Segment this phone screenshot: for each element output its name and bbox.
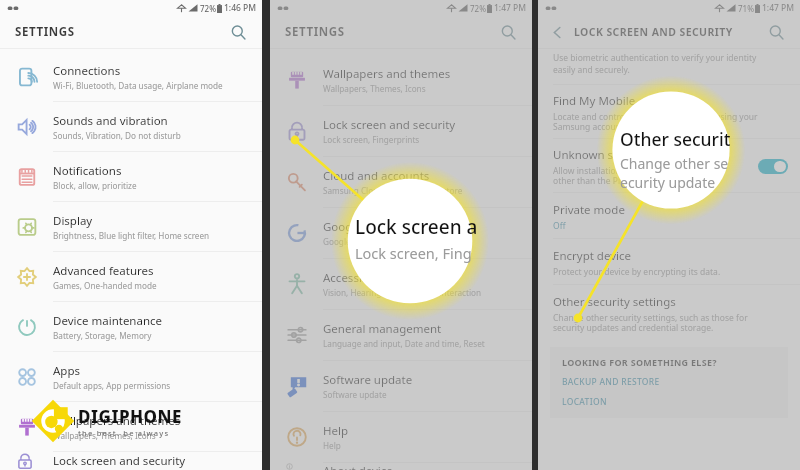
staticText: Language and input, Date and time, Reset [323, 338, 485, 349]
staticText: Other security settings [553, 294, 676, 310]
staticText: Lock screen a [355, 214, 478, 240]
staticText: Connections [53, 63, 121, 79]
staticText: LOOKING FOR SOMETHING ELSE? [562, 356, 717, 368]
staticText: BACKUP AND RESTORE [562, 376, 660, 388]
button[interactable]: Notifications [0, 152, 262, 202]
staticText: Google settings [323, 236, 384, 247]
staticText: Lock screen, Fing [355, 243, 472, 263]
button[interactable]: Other security settings [538, 285, 800, 339]
staticText: Find My Mobile [553, 93, 636, 109]
staticText: Sounds and vibration [53, 113, 168, 129]
staticText: Sounds, Vibration, Do not disturb [53, 130, 181, 141]
button[interactable]: Google [270, 208, 532, 259]
staticText: Google [323, 219, 362, 235]
button[interactable]: Private mode [538, 193, 800, 238]
button[interactable]: Lock screen and security [0, 452, 262, 470]
button[interactable]: Wallpapers and themes [0, 402, 262, 452]
staticText: Software update [323, 389, 387, 400]
button[interactable]: LOCATION [562, 396, 607, 408]
staticText: Vision, Hearing, Dexterity and interacti… [323, 287, 482, 298]
staticText: Samsung Cloud, Backup and restore [323, 185, 463, 196]
button[interactable]: Advanced features [0, 252, 262, 302]
button[interactable]: Sounds and vibration [0, 102, 262, 152]
staticText: Change other se [620, 154, 729, 173]
staticText: Default apps, App permissions [53, 380, 171, 391]
staticText: Wallpapers and themes [53, 413, 181, 429]
staticText: Software update [323, 372, 413, 388]
staticText: Display [53, 213, 93, 229]
button[interactable]: About device [270, 463, 532, 470]
staticText: 72% [470, 3, 486, 14]
button[interactable]: Digiphone logo [30, 398, 183, 444]
staticText: Device maintenance [53, 313, 163, 329]
button[interactable]: Help [270, 412, 532, 463]
staticText: 72% [200, 3, 216, 14]
button[interactable]: Use biometric authentication to verify y… [538, 51, 800, 79]
staticText: Encrypt device [553, 248, 631, 264]
staticText: Lock screen, Fingerprints [323, 134, 420, 145]
staticText: Notifications [53, 163, 122, 179]
button[interactable]: General management [270, 310, 532, 361]
staticText: 1:47 PM [494, 2, 527, 14]
staticText: LOCATION [562, 396, 607, 408]
staticText: Accessibility [323, 270, 388, 286]
staticText: Wallpapers, Themes, Icons [323, 83, 426, 94]
staticText: About device [323, 463, 393, 470]
button[interactable]: Search [497, 21, 519, 43]
staticText: ecurity update [620, 173, 716, 192]
staticText: Brightness, Blue light filter, Home scre… [53, 230, 210, 241]
button[interactable]: Software update [270, 361, 532, 412]
button[interactable]: Find My Mobile [538, 85, 800, 138]
button[interactable]: Toggle [758, 159, 788, 174]
staticText: Unknown sources [553, 147, 650, 163]
staticText: Lock screen and security [53, 453, 186, 469]
staticText: Protect your device by encrypting its da… [553, 266, 721, 278]
staticText: SETTINGS [15, 24, 75, 40]
staticText: 71% [738, 3, 754, 14]
staticText: Lock screen and security [323, 117, 456, 133]
button[interactable]: Apps [0, 352, 262, 402]
button[interactable]: Search [227, 21, 249, 43]
staticText: Allow installation of apps from sources … [553, 165, 708, 186]
staticText: Cloud and accounts [323, 168, 430, 184]
staticText: Help [323, 440, 341, 451]
button[interactable]: Back [546, 21, 568, 43]
staticText: Games, One-handed mode [53, 280, 157, 291]
button[interactable]: Cloud and accounts [270, 157, 532, 208]
button[interactable]: Search [765, 21, 787, 43]
staticText: Wallpapers, Themes, Icons [53, 430, 156, 441]
button[interactable]: Display [0, 202, 262, 252]
button[interactable]: BACKUP AND RESTORE [562, 376, 660, 388]
staticText: 1:46 PM [224, 2, 257, 14]
staticText: Battery, Storage, Memory [53, 330, 152, 341]
staticText: Locate and control your device remotely … [553, 111, 758, 132]
staticText: Off [553, 220, 566, 232]
staticText: Advanced features [53, 263, 154, 279]
staticText: Use biometric authentication to verify y… [553, 52, 757, 64]
button[interactable]: Unknown sources [538, 139, 800, 192]
staticText: Block, allow, prioritize [53, 180, 137, 191]
staticText: Help [323, 423, 349, 439]
staticText: DIGIPHONE [78, 405, 183, 428]
button[interactable]: Wallpapers and themes [270, 55, 532, 106]
staticText: Apps [53, 363, 81, 379]
button[interactable]: Device maintenance [0, 302, 262, 352]
staticText: LOCK SCREEN AND SECURITY [574, 25, 733, 39]
staticText: General management [323, 321, 442, 337]
staticText: Other securit [620, 127, 731, 151]
staticText: easily and securely. [553, 64, 630, 76]
button[interactable]: Connections [0, 52, 262, 102]
button[interactable]: Accessibility [270, 259, 532, 310]
staticText: Private mode [553, 202, 625, 218]
button[interactable]: Encrypt device [538, 239, 800, 284]
staticText: 1:47 PM [762, 2, 795, 14]
staticText: Change other security settings, such as … [553, 312, 748, 333]
staticText: SETTINGS [285, 24, 345, 40]
staticText: Wi-Fi, Bluetooth, Data usage, Airplane m… [53, 80, 223, 91]
button[interactable]: Lock screen and security [270, 106, 532, 157]
staticText: Wallpapers and themes [323, 66, 451, 82]
staticText: the best. be always [78, 428, 170, 438]
